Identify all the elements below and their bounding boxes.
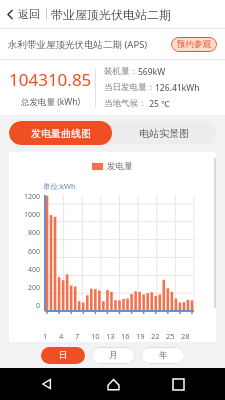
button[interactable]: 发电量曲线图 (9, 121, 112, 145)
staticText: 1 (43, 331, 48, 341)
staticText: 569kW (138, 66, 166, 78)
staticText: 25 (166, 331, 175, 341)
staticText: 1200 (24, 192, 41, 202)
button[interactable]: 月 (91, 347, 135, 364)
button[interactable]: 日 (41, 347, 85, 364)
staticText: 25 ℃ (147, 98, 170, 110)
staticText: 800 (28, 228, 41, 238)
staticText: 日 (59, 350, 68, 361)
button[interactable]: 年 (141, 347, 185, 364)
button[interactable]: Recents (160, 368, 196, 400)
staticText: 126.41kWh (155, 82, 200, 94)
staticText: 4 (59, 331, 64, 341)
staticText: 400 (28, 265, 41, 275)
staticText: 电站实景图 (139, 127, 189, 140)
staticText: 年 (159, 350, 168, 361)
staticText: 13 (106, 331, 115, 341)
staticText: 月 (109, 350, 118, 361)
staticText: 返回 (18, 7, 40, 21)
staticText: 19 (136, 331, 145, 341)
staticText: 发电量曲线图 (31, 127, 91, 140)
staticText: 0 (36, 301, 41, 311)
staticText: 7 (75, 331, 80, 341)
staticText: 装机量： (104, 66, 138, 77)
staticText: 200 (28, 283, 41, 293)
staticText: 发电量 (107, 161, 133, 172)
button[interactable]: 返回 (0, 3, 46, 25)
staticText: 总发电量 (kWh) (21, 96, 81, 108)
button[interactable]: Back (29, 368, 65, 400)
staticText: 当日发电量： (104, 82, 155, 93)
staticText: 1000 (24, 210, 41, 220)
staticText: 600 (28, 247, 41, 257)
staticText: 104310.85 (9, 68, 92, 91)
button[interactable]: 预约参观 (171, 37, 217, 52)
staticText: 16 (121, 331, 130, 341)
staticText: 10 (91, 331, 100, 341)
staticText: 22 (151, 331, 160, 341)
staticText: 带业屋顶光伏电站二期 (51, 7, 171, 22)
staticText: 28 (181, 331, 190, 341)
staticText: 当地气候： (104, 98, 147, 109)
staticText: 永利带业屋顶光伏电站二期 (APS) (8, 38, 148, 51)
button[interactable]: 电站实景图 (112, 121, 216, 145)
staticText: 单位:kWh (43, 181, 76, 191)
staticText: 预约参观 (177, 39, 211, 50)
button[interactable]: Home (95, 368, 131, 400)
